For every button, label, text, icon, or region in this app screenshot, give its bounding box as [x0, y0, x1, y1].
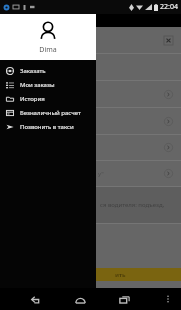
button[interactable]: Dima	[0, 14, 96, 60]
staticText: Заказать	[20, 67, 46, 75]
button[interactable]: ся водителя: подъезд,	[0, 187, 181, 223]
button[interactable]: Back	[25, 288, 47, 310]
staticText: Позвонить в такси	[20, 123, 74, 131]
button[interactable]: История	[0, 92, 96, 106]
button[interactable]	[0, 81, 181, 107]
button[interactable]	[0, 135, 181, 160]
staticText: История	[20, 95, 45, 103]
staticText: Dima	[39, 45, 57, 55]
button[interactable]: Позвонить в такси	[0, 120, 96, 134]
button[interactable]: Мои заказы	[0, 78, 96, 92]
staticText: у"	[98, 170, 104, 178]
staticText: 22:04	[160, 2, 178, 12]
button[interactable]	[0, 27, 181, 53]
button[interactable]: Безналичный расчет	[0, 106, 96, 120]
button[interactable]: Recent apps	[113, 288, 135, 310]
staticText: ся водителя: подъезд,	[100, 201, 165, 209]
button[interactable]: Заказать	[0, 64, 96, 78]
staticText: Безналичный расчет	[20, 109, 81, 117]
button[interactable]	[0, 54, 181, 80]
staticText: Мои заказы	[20, 81, 55, 89]
button[interactable]: More options	[159, 290, 177, 308]
staticText: ить	[115, 271, 126, 279]
button[interactable]: Home	[69, 288, 91, 310]
button[interactable]	[0, 108, 181, 134]
button[interactable]: ить	[0, 268, 181, 281]
button[interactable]: у"	[0, 161, 181, 186]
